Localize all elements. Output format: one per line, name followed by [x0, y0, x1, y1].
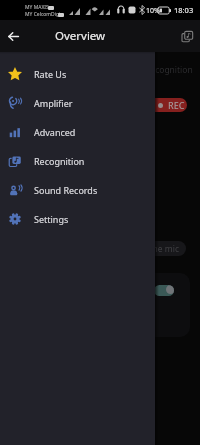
staticText: MY CelcomDigi [25, 11, 61, 18]
button[interactable]: Advanced [0, 117, 155, 146]
staticText: Recognition [34, 155, 85, 167]
staticText: Speech recognition [116, 64, 193, 76]
button[interactable]: Sound Records [0, 175, 155, 204]
button[interactable]: Phone mic [131, 241, 186, 256]
button[interactable]: Back [4, 27, 23, 46]
staticText: Overview [55, 28, 106, 44]
staticText: Sound Records [34, 184, 98, 196]
button[interactable]: Recognition [0, 146, 155, 175]
button[interactable]: REC [126, 98, 187, 112]
button[interactable]: Rate Us [0, 59, 155, 88]
staticText: MY MAXIS [25, 4, 49, 11]
staticText: 18:03 [174, 5, 194, 15]
staticText: 10% [146, 6, 160, 16]
button[interactable]: Speech recognition [182, 31, 193, 42]
staticText: Rate Us [34, 68, 67, 80]
staticText: Settings [34, 213, 69, 225]
staticText: Phone mic [137, 243, 180, 255]
staticText: Amplifier [34, 97, 73, 109]
button[interactable]: Settings [0, 204, 155, 233]
button[interactable] [154, 285, 174, 296]
button[interactable]: Amplifier [0, 88, 155, 117]
staticText: REC [168, 99, 185, 111]
staticText: Advanced [34, 126, 76, 138]
